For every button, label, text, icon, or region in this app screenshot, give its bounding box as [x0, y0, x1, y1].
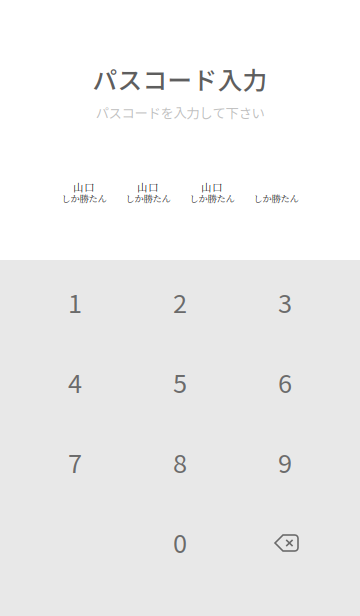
- staticText: 6: [278, 364, 292, 400]
- staticText: しか勝たん: [189, 191, 234, 205]
- button[interactable]: 5: [127, 342, 232, 422]
- button[interactable]: 8: [127, 422, 232, 502]
- button[interactable]: 3: [232, 262, 337, 342]
- staticText: 8: [173, 444, 187, 480]
- staticText: 4: [68, 364, 82, 400]
- staticText: 0: [173, 524, 187, 560]
- staticText: 山口: [73, 179, 95, 194]
- staticText: 9: [278, 444, 292, 480]
- button[interactable]: 2: [127, 262, 232, 342]
- staticText: しか勝たん: [125, 191, 170, 205]
- staticText: 5: [173, 364, 187, 400]
- button[interactable]: 1: [22, 262, 127, 342]
- staticText: 2: [173, 284, 187, 320]
- button[interactable]: 4: [22, 342, 127, 422]
- staticText: しか勝たん: [61, 191, 106, 205]
- button[interactable]: Delete: [232, 502, 337, 582]
- staticText: 山口: [201, 179, 223, 194]
- staticText: 1: [68, 284, 82, 320]
- staticText: 3: [278, 284, 292, 320]
- button[interactable]: 6: [232, 342, 337, 422]
- button[interactable]: 7: [22, 422, 127, 502]
- button[interactable]: 0: [127, 502, 232, 582]
- staticText: しか勝たん: [253, 191, 298, 205]
- button[interactable]: 9: [232, 422, 337, 502]
- staticText: パスコード入力: [92, 61, 267, 97]
- staticText: パスコードを入力して下さい: [95, 103, 264, 122]
- staticText: 山口: [137, 179, 159, 194]
- staticText: 7: [68, 444, 82, 480]
